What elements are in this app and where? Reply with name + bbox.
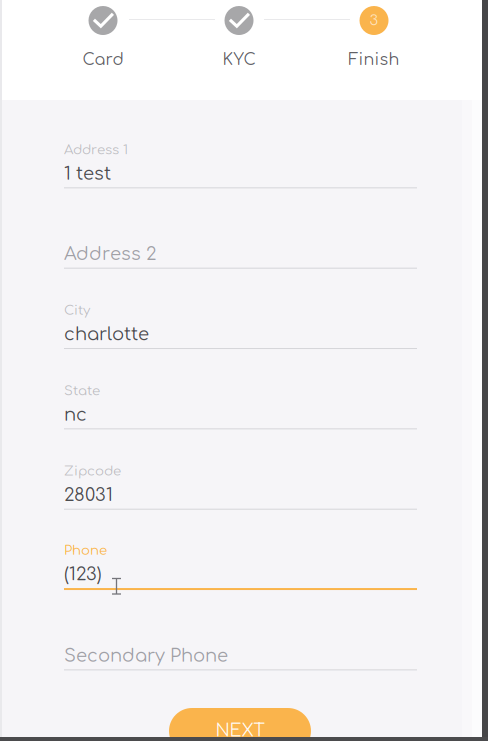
staticText: KYC (222, 51, 255, 69)
button[interactable]: Phone (64, 510, 417, 590)
button[interactable]: NEXT (169, 708, 311, 741)
staticText: 28031 (64, 485, 113, 505)
staticText: City (64, 303, 90, 318)
staticText: 1 test (64, 164, 111, 184)
staticText: Phone (64, 543, 107, 558)
staticText: Address 2 (64, 244, 156, 264)
button[interactable]: 3 (314, 6, 434, 76)
staticText: Secondary Phone (64, 646, 228, 666)
button[interactable]: City (64, 269, 417, 349)
button[interactable]: Address 1 (64, 108, 417, 188)
button[interactable]: Secondary Phone (64, 590, 417, 670)
button[interactable]: Address 2 (64, 188, 417, 269)
button[interactable]: KYC (179, 6, 299, 76)
staticText: State (64, 383, 100, 398)
staticText: Card (82, 51, 123, 69)
staticText: Address 1 (64, 142, 128, 157)
staticText: NEXT (215, 721, 264, 741)
staticText: (123) (64, 564, 102, 585)
staticText: 3 (369, 12, 378, 29)
button[interactable]: Zipcode (64, 429, 417, 510)
button[interactable]: State (64, 349, 417, 429)
staticText: nc (64, 405, 87, 425)
button[interactable]: Card (43, 6, 163, 76)
staticText: Finish (348, 51, 399, 69)
staticText: charlotte (64, 324, 149, 345)
staticText: Zipcode (64, 464, 121, 479)
